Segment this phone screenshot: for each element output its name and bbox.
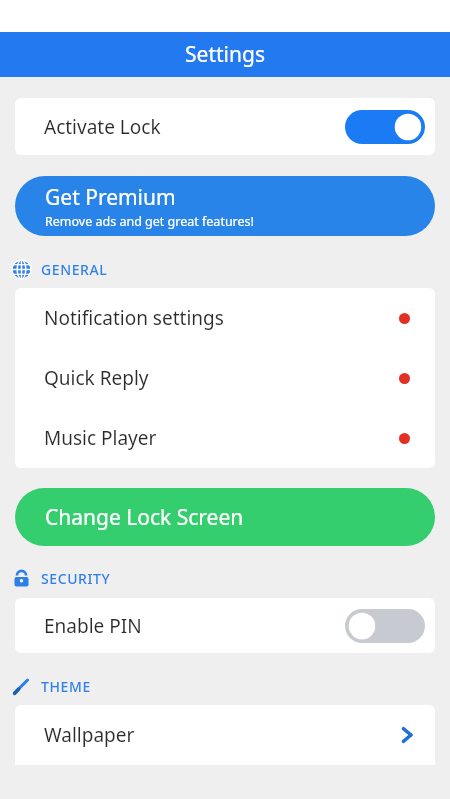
staticText: Notification settings: [44, 305, 224, 331]
button[interactable]: Quick Reply: [15, 348, 435, 408]
staticText: Quick Reply: [44, 365, 149, 391]
staticText: Wallpaper: [44, 722, 135, 748]
button[interactable]: Toggle on: [345, 110, 425, 144]
staticText: Music Player: [44, 425, 157, 451]
button[interactable]: Toggle off: [345, 609, 425, 643]
staticText: GENERAL: [41, 260, 108, 279]
button[interactable]: Activate Lock: [15, 98, 435, 155]
staticText: Remove ads and get great features!: [45, 213, 254, 230]
staticText: Activate Lock: [44, 114, 161, 140]
button[interactable]: Notification settings: [15, 288, 435, 348]
staticText: Change Lock Screen: [45, 503, 244, 532]
staticText: SECURITY: [41, 569, 111, 588]
staticText: Get Premium: [45, 183, 176, 212]
staticText: Enable PIN: [44, 613, 142, 639]
staticText: Settings: [185, 40, 265, 69]
button[interactable]: Change Lock Screen: [15, 488, 435, 546]
button[interactable]: Get Premium: [15, 176, 435, 236]
button[interactable]: Wallpaper: [15, 705, 435, 765]
button[interactable]: Enable PIN: [15, 598, 435, 653]
button[interactable]: Music Player: [15, 408, 435, 468]
staticText: THEME: [41, 677, 91, 696]
